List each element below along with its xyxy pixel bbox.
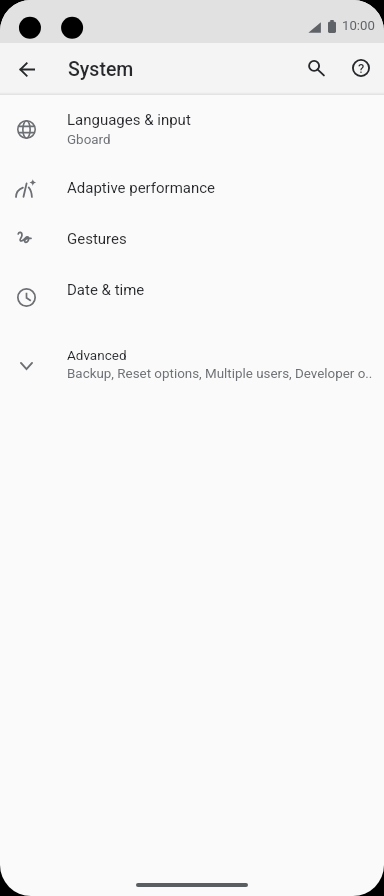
- button[interactable]: Date & time: [0, 264, 384, 315]
- staticText: Gestures: [67, 230, 127, 248]
- staticText: Backup, Reset options, Multiple users, D…: [67, 366, 373, 382]
- staticText: System: [68, 58, 134, 81]
- staticText: ?: [358, 61, 365, 76]
- staticText: Languages & input: [67, 111, 191, 129]
- button[interactable]: Gestures: [0, 213, 384, 264]
- button[interactable]: Adaptive performance: [0, 162, 384, 213]
- button[interactable]: Help: [339, 47, 383, 91]
- staticText: Date & time: [67, 281, 145, 299]
- button[interactable]: Search: [295, 47, 339, 91]
- staticText: 10:00: [342, 18, 375, 33]
- button[interactable]: Languages & input: [0, 96, 384, 162]
- button[interactable]: Back: [6, 49, 47, 90]
- staticText: Advanced: [67, 347, 127, 363]
- button[interactable]: Advanced: [0, 331, 384, 397]
- staticText: Adaptive performance: [67, 179, 216, 197]
- staticText: Gboard: [67, 132, 111, 148]
